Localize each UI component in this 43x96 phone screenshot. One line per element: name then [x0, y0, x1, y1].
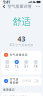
- button[interactable]: More: [35, 4, 41, 9]
- button[interactable]: 51: [21, 59, 31, 72]
- button[interactable]: 22: [2, 59, 12, 72]
- staticText: 51: [24, 65, 28, 68]
- staticText: 空气质量状况: [10, 53, 28, 56]
- staticText: NO₂: [35, 69, 37, 71]
- staticText: 空气质量详情: [7, 4, 31, 9]
- staticText: 9:41: [3, 0, 10, 5]
- button[interactable]: Back: [2, 4, 6, 9]
- button[interactable]: 14: [12, 59, 21, 72]
- button[interactable]: 18: [31, 59, 40, 72]
- staticText: PM10: [5, 69, 9, 71]
- staticText: AQI 空气质量指数: [9, 43, 33, 47]
- staticText: PM2.5: [15, 69, 19, 71]
- staticText: 健康建议: [3, 88, 15, 91]
- staticText: 43: [17, 34, 25, 43]
- staticText: 舒适: [12, 16, 30, 27]
- staticText: 14: [15, 65, 19, 68]
- button[interactable]: 空气质量提醒: [0, 74, 43, 85]
- staticText: 空气质量提醒: [10, 78, 19, 84]
- staticText: 18: [34, 65, 38, 68]
- staticText: 22: [5, 65, 9, 68]
- staticText: 已开启: [22, 79, 31, 83]
- staticText: 适宜户外活动: [10, 95, 28, 96]
